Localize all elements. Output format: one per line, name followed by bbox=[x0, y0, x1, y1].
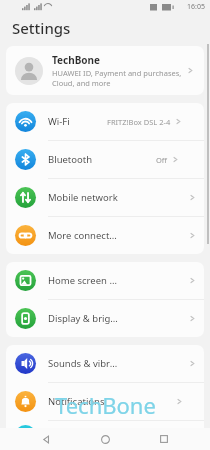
button[interactable]: Wi-Fi bbox=[6, 103, 204, 140]
button[interactable]: Home screen & wallpaper bbox=[6, 262, 204, 299]
staticText: More connections bbox=[48, 229, 118, 242]
staticText: Home screen & wallpaper bbox=[48, 274, 118, 287]
button[interactable]: Sounds & vibration bbox=[6, 345, 204, 382]
button[interactable]: Recents bbox=[154, 429, 174, 449]
staticText: Mobile network bbox=[48, 191, 118, 204]
staticText: TechBone bbox=[55, 390, 156, 420]
staticText: TechBone bbox=[52, 53, 101, 67]
button[interactable]: Back bbox=[36, 429, 56, 449]
button[interactable]: Display & brightness bbox=[6, 300, 204, 337]
button[interactable]: Biometrics & password bbox=[6, 421, 204, 450]
staticText: FRITZ!Box DSL 2-4 bbox=[107, 117, 171, 127]
button[interactable]: TechBone bbox=[6, 46, 204, 95]
button[interactable]: Bluetooth bbox=[6, 141, 204, 178]
staticText: Notifications bbox=[48, 395, 105, 408]
staticText: Biometrics & password bbox=[48, 429, 118, 442]
button[interactable]: More connections bbox=[6, 217, 204, 254]
staticText: HUAWEI ID, Payment and purchases, Cloud,… bbox=[52, 68, 182, 88]
button[interactable]: Mobile network bbox=[6, 179, 204, 216]
button[interactable]: Home bbox=[95, 429, 115, 449]
button[interactable]: Notifications bbox=[6, 383, 204, 420]
staticText: 16:05 bbox=[187, 2, 205, 12]
staticText: Off bbox=[156, 155, 168, 165]
staticText: Display & brightness bbox=[48, 312, 118, 325]
staticText: Wi-Fi bbox=[48, 115, 70, 128]
staticText: Sounds & vibration bbox=[48, 357, 118, 370]
staticText: Bluetooth bbox=[48, 153, 93, 166]
staticText: Settings bbox=[12, 18, 71, 38]
